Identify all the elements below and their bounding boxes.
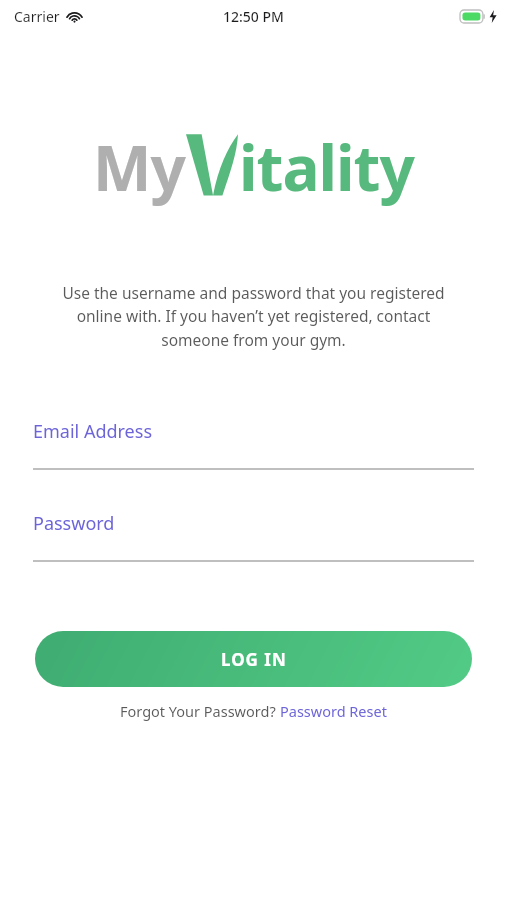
staticText: Use the username and password that you r… (44, 282, 463, 351)
staticText: itality (239, 125, 414, 209)
button[interactable]: LOG IN (35, 631, 472, 687)
button[interactable]: Password (0, 511, 507, 562)
button[interactable]: Email Address (0, 419, 507, 470)
staticText: LOG IN (221, 648, 287, 671)
staticText: Forgot Your Password? (120, 701, 280, 721)
staticText: Carrier (14, 7, 60, 26)
staticText: My (93, 125, 185, 209)
staticText: Password Reset (280, 701, 387, 721)
staticText: 12:50 PM (223, 7, 284, 26)
button[interactable]: Password Reset (280, 701, 387, 721)
staticText: Password (33, 511, 115, 536)
staticText: Email Address (33, 419, 153, 444)
